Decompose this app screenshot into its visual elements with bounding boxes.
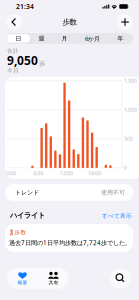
button[interactable]: 共有 (38, 268, 69, 289)
staticText: 今日 (7, 67, 19, 74)
staticText: 9,050 (7, 52, 38, 68)
button[interactable]: 週 (30, 34, 53, 43)
staticText: 1,000 (124, 106, 137, 113)
button[interactable]: 戻る (6, 14, 22, 30)
button[interactable]: 6か月 (76, 34, 109, 43)
staticText: 週 (38, 35, 44, 42)
staticText: 合計 (7, 47, 19, 54)
staticText: ハイライト (10, 211, 45, 220)
staticText: 6か月 (85, 34, 100, 42)
staticText: 0 (124, 164, 127, 171)
staticText: 月 (61, 35, 67, 42)
staticText: 過去7日間の1日平均歩数は7,724歩でした。 (9, 238, 131, 247)
staticText: 使用不可 (101, 189, 125, 196)
button[interactable]: すべて表示 (102, 212, 132, 220)
button[interactable]: 検索 (110, 268, 131, 289)
staticText: 歩数 (62, 17, 76, 27)
button[interactable]: 歩数 (5, 224, 133, 252)
staticText: トレンド (15, 189, 39, 196)
button[interactable]: トレンド (5, 184, 133, 201)
staticText: 共有 (48, 280, 58, 286)
staticText: すべて表示 (102, 212, 132, 219)
staticText: 6:00 (33, 170, 43, 177)
staticText: 概要 (17, 280, 27, 286)
staticText: 年 (117, 35, 123, 42)
staticText: 1,500 (124, 77, 137, 84)
staticText: 18:00 (88, 170, 101, 177)
button[interactable]: 追加 (117, 14, 133, 30)
staticText: 歩数 (14, 229, 26, 236)
staticText: 12:00 (60, 170, 73, 177)
staticText: 歩 (39, 60, 45, 67)
button[interactable]: 概要 (7, 268, 38, 289)
staticText: 0:00 (6, 170, 16, 177)
button[interactable]: 月 (53, 34, 76, 43)
staticText: 500 (124, 135, 133, 142)
button[interactable]: 年 (109, 34, 132, 43)
staticText: 日 (15, 35, 21, 42)
staticText: 21:34 (16, 2, 34, 11)
button[interactable]: 日 (7, 34, 30, 43)
